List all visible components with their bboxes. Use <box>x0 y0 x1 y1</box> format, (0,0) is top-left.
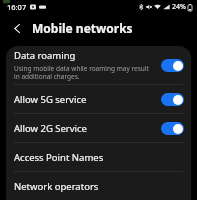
staticText: Network operators <box>14 180 99 193</box>
staticText: 16:07 <box>7 2 27 12</box>
button[interactable]: Data roaming <box>6 46 191 84</box>
button[interactable]: Toggle <box>161 59 184 72</box>
button[interactable]: Back <box>7 18 27 38</box>
button[interactable]: Toggle <box>161 122 184 135</box>
staticText: Data roaming <box>14 49 76 62</box>
button[interactable]: Access Point Names <box>6 143 191 171</box>
staticText: Using mobile data while roaming may resu… <box>14 64 156 81</box>
button[interactable]: Allow 2G Service <box>6 114 191 142</box>
button[interactable]: Allow 5G service <box>6 85 191 113</box>
button[interactable]: Toggle <box>161 93 184 106</box>
button[interactable]: Network operators <box>6 172 191 200</box>
staticText: Allow 2G Service <box>14 122 161 135</box>
staticText: Mobile networks <box>32 20 133 36</box>
staticText: Access Point Names <box>14 151 104 164</box>
staticText: Allow 5G service <box>14 93 161 106</box>
staticText: 24% <box>172 2 186 12</box>
